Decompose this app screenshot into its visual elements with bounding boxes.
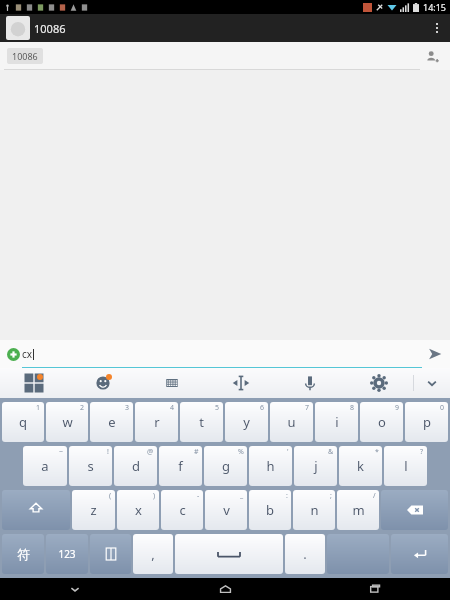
staticText: 123 [58, 547, 76, 561]
staticText: 10086 [12, 50, 38, 62]
staticText: m [352, 501, 365, 519]
button[interactable]: a [23, 446, 67, 486]
button[interactable]: n [293, 490, 335, 530]
staticText: d [132, 457, 140, 475]
button[interactable]: s [69, 446, 112, 486]
staticText: : [286, 491, 288, 501]
button[interactable]: shift [2, 490, 70, 530]
staticText: 1 [36, 403, 41, 413]
button[interactable]: t [180, 402, 223, 442]
button[interactable]: Back [0, 578, 150, 600]
staticText: 14:15 [423, 1, 447, 13]
staticText: 3 [125, 403, 130, 413]
button[interactable]: enter [391, 534, 448, 574]
staticText: j [314, 457, 318, 475]
button[interactable]: Recents [300, 578, 450, 600]
button[interactable]: del [381, 490, 448, 530]
staticText: , [151, 545, 155, 563]
button[interactable]: b [249, 490, 291, 530]
button[interactable]: Add attachment [3, 344, 23, 364]
staticText: u [287, 413, 296, 431]
staticText: - [197, 491, 200, 501]
staticText: r [154, 413, 160, 431]
button[interactable]: Voice input [275, 368, 344, 398]
staticText: e [108, 413, 116, 431]
staticText: i [335, 413, 339, 431]
staticText: y [243, 413, 250, 431]
button[interactable]: l [384, 446, 427, 486]
button[interactable]: Home [150, 578, 300, 600]
staticText: & [328, 447, 334, 457]
button[interactable]: x [117, 490, 159, 530]
button[interactable]: 123 [46, 534, 88, 574]
button[interactable]: space [175, 534, 283, 574]
button[interactable]: v [205, 490, 247, 530]
staticText: t [199, 413, 204, 431]
staticText: a [41, 457, 49, 475]
button[interactable]: f [159, 446, 202, 486]
button[interactable]: u [270, 402, 313, 442]
button[interactable]: k [339, 446, 382, 486]
staticText: cx [22, 347, 33, 361]
button[interactable]: c [161, 490, 203, 530]
button[interactable]: cx [22, 343, 420, 365]
button[interactable]: e [90, 402, 133, 442]
staticText: _ [240, 491, 244, 501]
staticText: * [375, 447, 379, 457]
button[interactable]: h [249, 446, 292, 486]
button[interactable]: p [405, 402, 448, 442]
button[interactable]: q [2, 402, 44, 442]
staticText: k [357, 457, 364, 475]
button[interactable]: d [114, 446, 157, 486]
button[interactable]: g [204, 446, 247, 486]
staticText: ~ [59, 447, 64, 457]
staticText: / [373, 491, 376, 501]
staticText: p [423, 413, 431, 431]
button[interactable]: Back [0, 18, 20, 38]
button[interactable]: Settings [344, 368, 413, 398]
button[interactable]: j [294, 446, 337, 486]
button[interactable]: Apps [0, 368, 68, 398]
button[interactable]: More options [424, 14, 450, 42]
staticText: l [404, 457, 408, 475]
staticText: 0 [440, 403, 445, 413]
button[interactable]: Emoji [68, 368, 137, 398]
button[interactable]: Cursor control [206, 368, 275, 398]
button[interactable]: 符 [2, 534, 44, 574]
staticText: 符 [17, 546, 30, 562]
button[interactable] [6, 16, 30, 40]
button[interactable]: y [225, 402, 268, 442]
button[interactable]: , [133, 534, 173, 574]
button[interactable]: Hide keyboard [414, 368, 450, 398]
button[interactable]: lang [90, 534, 131, 574]
staticText: ) [153, 491, 156, 501]
staticText: 2 [80, 403, 85, 413]
button[interactable]: o [360, 402, 403, 442]
button[interactable]: 10086 [7, 48, 43, 64]
staticText: 10086 [34, 21, 66, 36]
staticText: ' [287, 447, 289, 457]
staticText: n [310, 501, 319, 519]
staticText: g [222, 457, 230, 475]
button[interactable]: . [285, 534, 325, 574]
button[interactable]: z [72, 490, 115, 530]
staticText: 7 [305, 403, 310, 413]
button[interactable]: i [315, 402, 358, 442]
button[interactable]: w [46, 402, 88, 442]
staticText: 6 [260, 403, 265, 413]
staticText: s [87, 457, 94, 475]
button[interactable] [327, 534, 389, 574]
button[interactable]: Send [424, 343, 446, 365]
button[interactable]: r [135, 402, 178, 442]
staticText: % [238, 447, 244, 457]
button[interactable]: Add contact [422, 46, 442, 66]
staticText: ! [107, 447, 109, 457]
button[interactable]: m [337, 490, 379, 530]
staticText: c [179, 501, 186, 519]
staticText: q [19, 413, 27, 431]
button[interactable]: Keyboard [137, 368, 206, 398]
staticText: z [90, 501, 97, 519]
staticText: w [62, 413, 73, 431]
staticText: ; [330, 491, 332, 501]
staticText: ( [109, 491, 112, 501]
